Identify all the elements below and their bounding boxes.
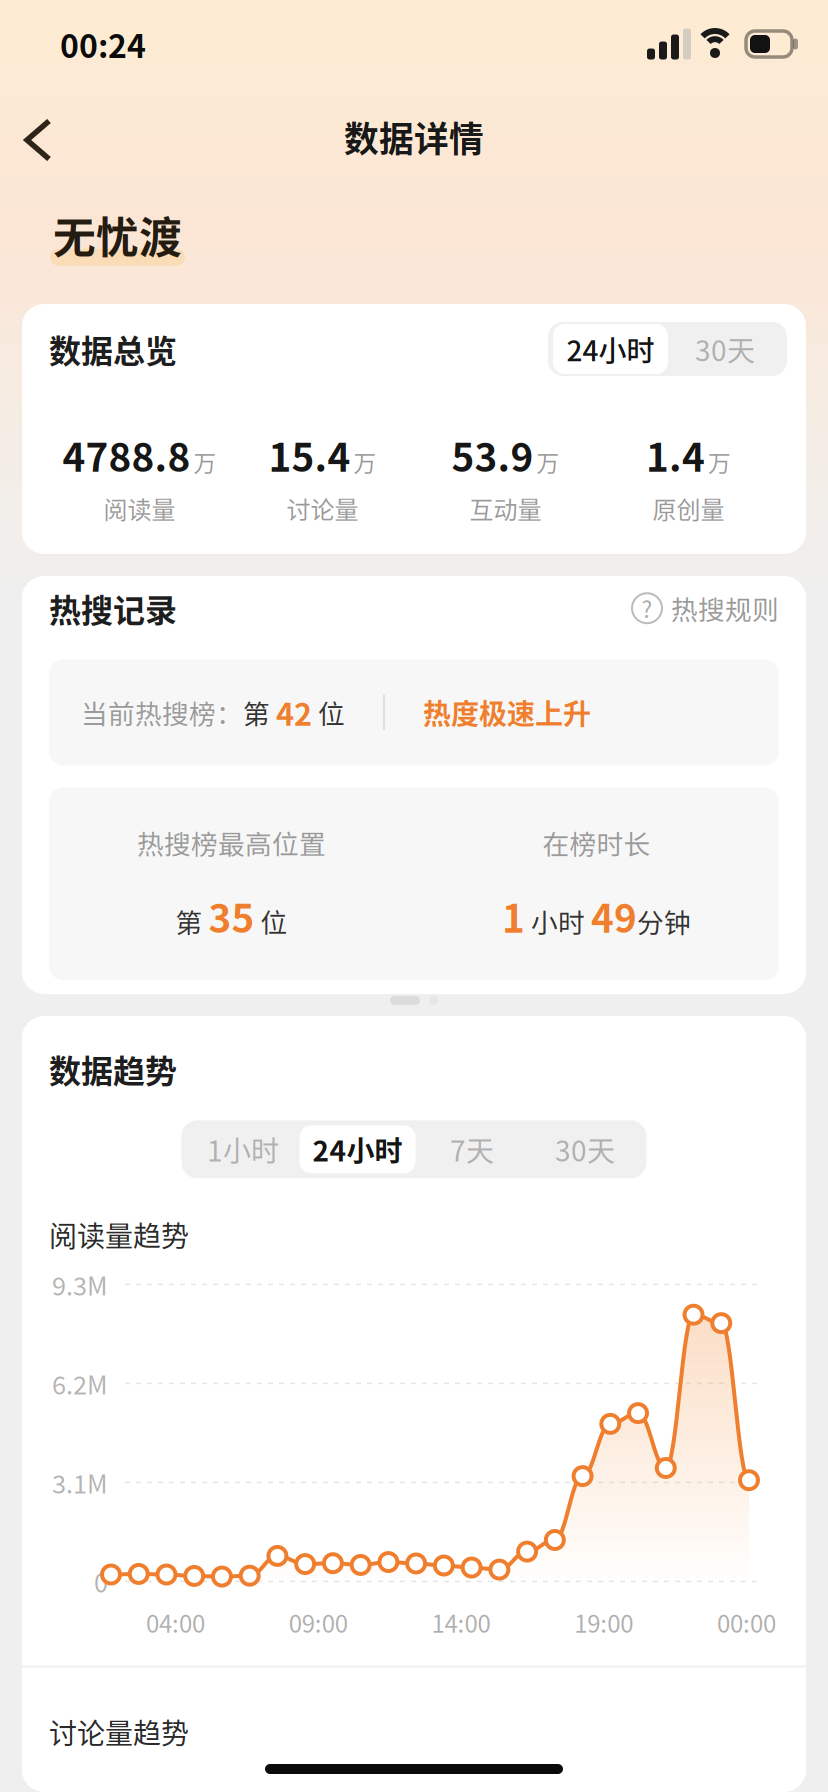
staticText: 35: [208, 888, 254, 944]
staticText: 49: [591, 888, 637, 944]
staticText: 热搜记录: [49, 585, 177, 631]
staticText: 小时: [525, 902, 591, 940]
staticText: 阅读量趋势: [49, 1214, 189, 1255]
staticText: 位: [254, 902, 287, 940]
staticText: 42: [276, 690, 312, 735]
staticText: 19:00: [574, 1605, 633, 1640]
button[interactable]: 30天: [668, 324, 782, 374]
staticText: 7天: [450, 1129, 494, 1170]
staticText: 15.4: [268, 427, 350, 483]
staticText: 1小时: [207, 1129, 279, 1170]
staticText: 互动量: [469, 491, 541, 526]
staticText: 14:00: [431, 1605, 490, 1640]
staticText: 热搜榜最高位置: [137, 823, 326, 862]
staticText: 讨论量趋势: [49, 1712, 189, 1752]
staticText: 00:24: [60, 21, 146, 67]
staticText: 1.4: [646, 427, 705, 483]
staticText: 在榜时长: [542, 823, 650, 862]
staticText: 53.9: [451, 427, 533, 483]
staticText: 万: [193, 446, 216, 478]
staticText: ?: [641, 592, 652, 625]
button[interactable]: ?: [632, 589, 779, 627]
staticText: 0: [94, 1563, 108, 1600]
staticText: 24小时: [312, 1129, 402, 1170]
button[interactable]: 7天: [415, 1125, 528, 1173]
staticText: 第: [175, 902, 208, 940]
staticText: 热度极速上升: [423, 692, 591, 733]
staticText: 热搜规则: [671, 589, 779, 627]
button[interactable]: 24小时: [299, 1125, 415, 1173]
staticText: 6.2M: [52, 1365, 108, 1402]
staticText: 无忧渡: [53, 204, 182, 266]
staticText: 讨论量: [286, 491, 358, 526]
staticText: 数据趋势: [49, 1046, 177, 1092]
staticText: 00:00: [717, 1605, 776, 1640]
staticText: 分钟: [637, 902, 691, 940]
staticText: 09:00: [289, 1605, 348, 1640]
staticText: 数据详情: [344, 112, 484, 162]
button[interactable]: 24小时: [553, 324, 668, 374]
staticText: 9.3M: [52, 1266, 108, 1303]
staticText: 3.1M: [52, 1464, 108, 1501]
staticText: 30天: [695, 329, 755, 369]
button[interactable]: 30天: [528, 1125, 641, 1173]
staticText: 数据总览: [49, 326, 177, 372]
staticText: 第: [243, 693, 276, 732]
staticText: 万: [708, 446, 731, 478]
staticText: 04:00: [146, 1605, 205, 1640]
staticText: 万: [353, 446, 376, 478]
staticText: 当前热搜榜：: [81, 693, 243, 732]
staticText: 1: [502, 888, 525, 944]
staticText: 阅读量: [103, 491, 175, 526]
staticText: 万: [536, 446, 559, 478]
staticText: 位: [312, 693, 345, 732]
staticText: 原创量: [652, 491, 724, 526]
staticText: 4788.8: [62, 427, 190, 483]
staticText: 24小时: [566, 329, 654, 369]
button[interactable]: 1小时: [186, 1125, 299, 1173]
button[interactable]: 返回: [0, 97, 79, 171]
staticText: 30天: [555, 1129, 615, 1170]
